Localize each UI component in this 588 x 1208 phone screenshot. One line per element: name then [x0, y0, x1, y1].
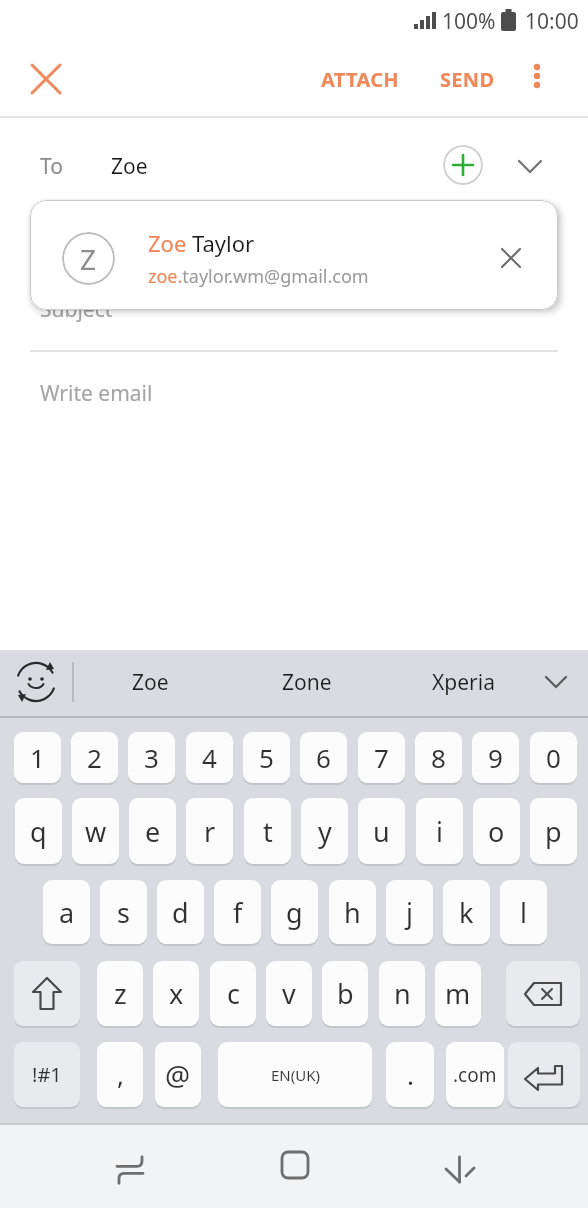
- button[interactable]: [14, 961, 80, 1026]
- button[interactable]: i: [416, 798, 463, 864]
- button[interactable]: [536, 662, 576, 702]
- button[interactable]: [430, 1135, 490, 1195]
- button[interactable]: m: [435, 961, 481, 1026]
- staticText: b: [337, 975, 354, 1012]
- staticText: 100%: [442, 7, 496, 35]
- staticText: q: [30, 813, 47, 850]
- button[interactable]: [105, 1135, 165, 1195]
- staticText: m: [445, 975, 471, 1012]
- staticText: r: [204, 813, 216, 850]
- button[interactable]: [10, 656, 62, 708]
- button[interactable]: Zone: [247, 656, 367, 708]
- staticText: .: [407, 1057, 414, 1092]
- button[interactable]: c: [210, 961, 256, 1026]
- button[interactable]: EN(UK): [218, 1042, 372, 1107]
- button[interactable]: .com: [446, 1042, 504, 1107]
- button[interactable]: x: [153, 961, 199, 1026]
- button[interactable]: [489, 236, 533, 280]
- button[interactable]: Xperia: [403, 656, 523, 708]
- staticText: Xperia: [432, 668, 495, 697]
- button[interactable]: ,: [97, 1042, 143, 1107]
- staticText: y: [318, 813, 332, 850]
- button[interactable]: !#1: [14, 1042, 80, 1107]
- staticText: p: [545, 813, 562, 850]
- button[interactable]: .: [386, 1042, 434, 1107]
- staticText: z: [114, 975, 127, 1012]
- staticText: ATTACH: [321, 66, 399, 93]
- button[interactable]: y: [301, 798, 348, 864]
- staticText: v: [282, 975, 296, 1012]
- staticText: 8: [431, 740, 446, 775]
- button[interactable]: b: [322, 961, 368, 1026]
- button[interactable]: [508, 145, 552, 185]
- staticText: 6: [316, 740, 331, 775]
- button[interactable]: 4: [186, 732, 233, 783]
- staticText: w: [85, 813, 107, 850]
- button[interactable]: SEND: [428, 57, 506, 101]
- staticText: x: [169, 975, 184, 1012]
- button[interactable]: 9: [472, 732, 519, 783]
- staticText: 0: [546, 740, 561, 775]
- button[interactable]: 2: [71, 732, 118, 783]
- button[interactable]: 3: [128, 732, 175, 783]
- button[interactable]: [265, 1135, 325, 1195]
- staticText: Zoe: [132, 668, 169, 697]
- button[interactable]: 8: [415, 732, 462, 783]
- staticText: e: [145, 813, 161, 850]
- button[interactable]: r: [186, 798, 233, 864]
- staticText: o: [488, 813, 505, 850]
- staticText: Write email: [40, 379, 153, 408]
- staticText: u: [373, 813, 390, 850]
- button[interactable]: [508, 1042, 580, 1107]
- button[interactable]: 7: [358, 732, 405, 783]
- staticText: 5: [259, 740, 274, 775]
- button[interactable]: p: [530, 798, 577, 864]
- staticText: 3: [144, 740, 159, 775]
- staticText: l: [520, 894, 527, 931]
- button[interactable]: g: [271, 880, 318, 944]
- staticText: g: [286, 894, 303, 931]
- button[interactable]: Zoe: [90, 656, 210, 708]
- button[interactable]: @: [155, 1042, 201, 1107]
- staticText: a: [59, 894, 75, 931]
- staticText: h: [344, 894, 361, 931]
- button[interactable]: q: [15, 798, 62, 864]
- button[interactable]: n: [379, 961, 425, 1026]
- button[interactable]: [518, 57, 558, 101]
- button[interactable]: j: [386, 880, 433, 944]
- button[interactable]: k: [443, 880, 490, 944]
- button[interactable]: v: [266, 961, 312, 1026]
- staticText: ,: [117, 1057, 124, 1092]
- button[interactable]: z: [97, 961, 143, 1026]
- staticText: s: [117, 894, 130, 931]
- button[interactable]: 6: [300, 732, 347, 783]
- button[interactable]: Z: [30, 200, 558, 310]
- button[interactable]: [506, 961, 580, 1026]
- button[interactable]: f: [214, 880, 261, 944]
- staticText: Z: [80, 240, 97, 278]
- button[interactable]: l: [500, 880, 547, 944]
- staticText: zoe.taylor.wm@gmail.com: [148, 264, 369, 289]
- button[interactable]: w: [72, 798, 119, 864]
- button[interactable]: d: [157, 880, 204, 944]
- staticText: Zoe: [111, 152, 148, 181]
- staticText: f: [233, 894, 243, 931]
- button[interactable]: ATTACH: [306, 57, 414, 101]
- button[interactable]: o: [473, 798, 520, 864]
- button[interactable]: a: [43, 880, 90, 944]
- button[interactable]: t: [244, 798, 291, 864]
- staticText: 1: [30, 740, 45, 775]
- staticText: 10:00: [525, 7, 579, 35]
- button[interactable]: s: [100, 880, 147, 944]
- button[interactable]: 1: [14, 732, 61, 783]
- staticText: d: [172, 894, 189, 931]
- button[interactable]: u: [358, 798, 405, 864]
- staticText: t: [263, 813, 273, 850]
- button[interactable]: [24, 57, 68, 101]
- button[interactable]: [443, 145, 483, 185]
- staticText: @: [165, 1056, 191, 1094]
- button[interactable]: h: [329, 880, 376, 944]
- button[interactable]: e: [129, 798, 176, 864]
- button[interactable]: 0: [530, 732, 577, 783]
- button[interactable]: 5: [243, 732, 290, 783]
